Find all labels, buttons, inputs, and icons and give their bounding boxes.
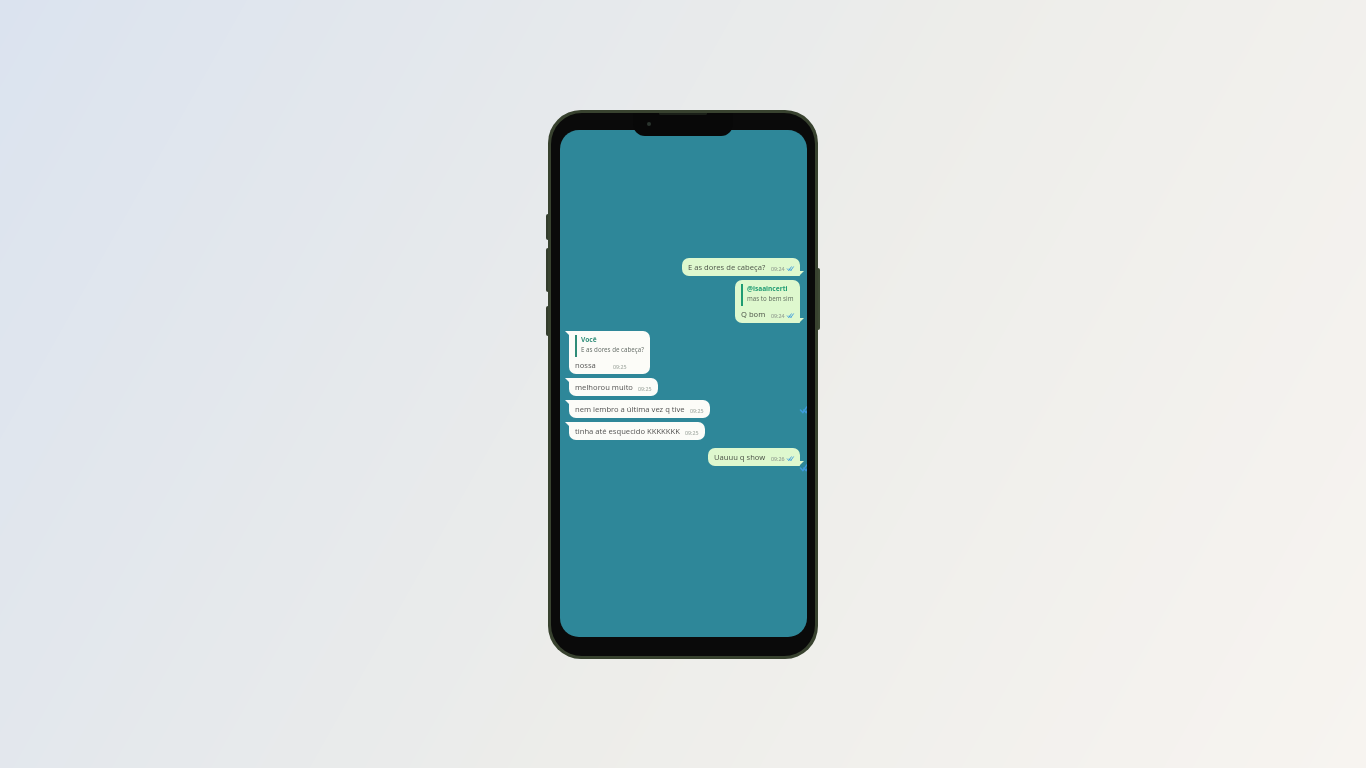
button[interactable]: Mute switch — [546, 306, 551, 336]
button[interactable]: tinha até esquecido KKKKKKK — [569, 422, 705, 440]
staticText: mas to bem sim — [747, 294, 794, 302]
staticText: 09:26 — [771, 455, 785, 462]
staticText: E as dores de cabeça? — [581, 345, 644, 353]
staticText: nossa — [575, 360, 596, 370]
button[interactable]: nem lembro a última vez q tive — [569, 400, 710, 418]
staticText: Uauuu q show — [714, 452, 766, 462]
staticText: 09:24 — [771, 312, 785, 319]
staticText: nem lembro a última vez q tive — [575, 404, 685, 414]
staticText: @isaaincerti — [747, 284, 788, 293]
staticText: Você — [581, 335, 597, 344]
staticText: melhorou muito — [575, 382, 633, 392]
button[interactable]: Uauuu q show — [708, 448, 800, 466]
button[interactable]: Volume down — [546, 248, 551, 292]
button[interactable]: Volume up — [546, 214, 551, 240]
button[interactable]: melhorou muito — [569, 378, 658, 396]
button[interactable]: Você — [569, 331, 650, 374]
staticText: tinha até esquecido KKKKKKK — [575, 426, 680, 436]
staticText: Q bom — [741, 309, 766, 319]
button[interactable]: Power — [815, 268, 820, 330]
staticText: 09:24 — [771, 265, 785, 272]
staticText: E as dores de cabeça? — [688, 262, 766, 272]
staticText: 09:25 — [638, 385, 652, 392]
button[interactable]: E as dores de cabeça? — [682, 258, 800, 276]
staticText: 09:25 — [690, 407, 704, 414]
button[interactable]: @isaaincerti — [735, 280, 800, 323]
staticText: 09:25 — [685, 429, 699, 436]
staticText: 09:25 — [613, 363, 627, 370]
